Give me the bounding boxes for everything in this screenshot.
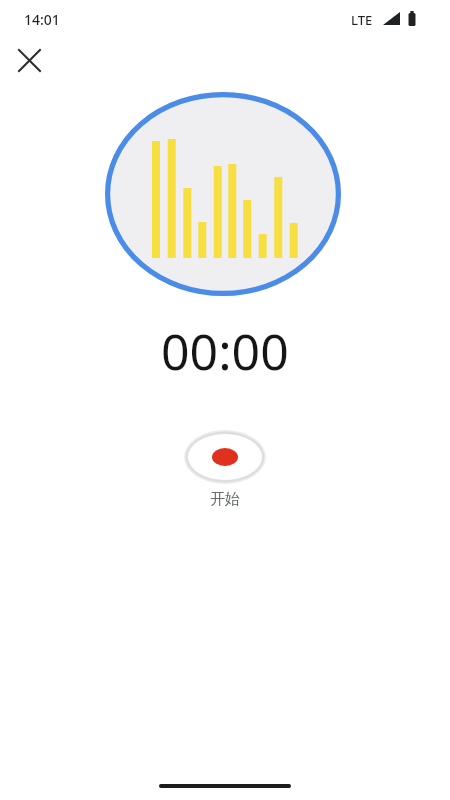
button[interactable]: Close [9,40,49,80]
staticText: LTE [351,11,373,29]
button[interactable]: 开始 [175,427,275,509]
staticText: 开始 [210,490,240,509]
staticText: 14:01 [24,10,60,29]
staticText: 00:00 [161,317,289,385]
